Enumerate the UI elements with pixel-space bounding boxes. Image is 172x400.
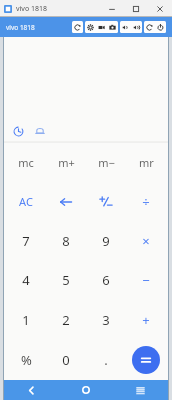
button[interactable]: 6	[86, 260, 126, 300]
staticText: +	[142, 311, 150, 329]
button[interactable]: Recent apps	[113, 380, 168, 400]
button[interactable]: AC	[6, 182, 46, 221]
button[interactable]: camera	[107, 21, 118, 33]
staticText: .	[104, 351, 108, 369]
staticText: mc	[18, 155, 34, 170]
staticText: AC	[19, 194, 33, 209]
button[interactable]: m−	[86, 143, 126, 182]
button[interactable]: Backspace	[46, 182, 86, 221]
button[interactable]: .	[86, 340, 126, 380]
button[interactable]: 1	[6, 300, 46, 340]
staticText: 2	[62, 311, 70, 329]
button[interactable]: 2	[46, 300, 86, 340]
button[interactable]: ×	[126, 221, 166, 260]
staticText: %	[21, 351, 32, 369]
button[interactable]: rotate	[72, 21, 83, 33]
button[interactable]: power	[155, 21, 166, 33]
button[interactable]: mc	[6, 143, 46, 182]
staticText: vivo 1818	[6, 23, 35, 32]
button[interactable]: 8	[46, 221, 86, 260]
button[interactable]: +	[126, 300, 166, 340]
button[interactable]: Back	[4, 380, 58, 400]
staticText: 8	[62, 232, 70, 250]
button[interactable]: volup	[131, 21, 142, 33]
button[interactable]: m+	[46, 143, 86, 182]
staticText: vivo 1818	[16, 4, 47, 14]
staticText: ×	[142, 232, 150, 250]
staticText: 5	[62, 271, 70, 289]
staticText: m+	[58, 155, 75, 170]
button[interactable]: History	[10, 123, 26, 139]
staticText: 1	[22, 311, 30, 329]
button[interactable]: 9	[86, 221, 126, 260]
staticText: 7	[22, 232, 30, 250]
button[interactable]: Minimize	[100, 0, 124, 17]
button[interactable]	[126, 340, 166, 380]
button[interactable]: 3	[86, 300, 126, 340]
button[interactable]: video	[96, 21, 107, 33]
button[interactable]: 0	[46, 340, 86, 380]
staticText: −	[142, 271, 150, 289]
button[interactable]: settings	[85, 21, 96, 33]
button[interactable]: ÷	[126, 182, 166, 221]
button[interactable]: Reminder	[32, 123, 48, 139]
button[interactable]: Maximize	[124, 0, 148, 17]
staticText: 9	[102, 232, 110, 250]
staticText: 6	[102, 271, 110, 289]
button[interactable]: Close	[148, 0, 172, 17]
button[interactable]: 4	[6, 260, 46, 300]
staticText: 4	[22, 271, 30, 289]
button[interactable]: Plus minus	[86, 182, 126, 221]
staticText: ÷	[142, 193, 150, 211]
button[interactable]: Home	[58, 380, 113, 400]
staticText: 0	[62, 351, 70, 369]
button[interactable]: reload	[144, 21, 155, 33]
button[interactable]: mr	[126, 143, 166, 182]
button[interactable]: %	[6, 340, 46, 380]
button[interactable]: 7	[6, 221, 46, 260]
button[interactable]: −	[126, 260, 166, 300]
button[interactable]: voldown	[120, 21, 131, 33]
staticText: mr	[139, 155, 154, 170]
staticText: m−	[98, 155, 115, 170]
button[interactable]: 5	[46, 260, 86, 300]
staticText: 3	[102, 311, 110, 329]
